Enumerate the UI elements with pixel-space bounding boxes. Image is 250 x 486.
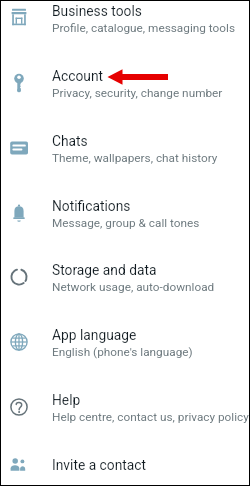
staticText: Message, group & call tones: [52, 216, 200, 230]
staticText: Privacy, security, change number: [52, 86, 223, 100]
button[interactable]: Business tools: [1, 0, 249, 51]
staticText: Account: [52, 68, 104, 84]
other: Chats: [7, 136, 31, 160]
button[interactable]: Account: [1, 51, 249, 116]
staticText: Invite a contact: [52, 457, 147, 473]
button[interactable]: App language: [1, 310, 249, 375]
button[interactable]: Storage and data: [1, 245, 249, 310]
staticText: Profile, catalogue, messaging tools: [52, 21, 235, 35]
other: Business tools: [7, 6, 31, 30]
staticText: Network usage, auto-download: [52, 280, 215, 294]
other: Storage and data: [7, 265, 31, 289]
staticText: English (phone's language): [52, 345, 193, 359]
staticText: Help centre, contact us, privacy policy: [52, 410, 249, 424]
staticText: Chats: [52, 133, 88, 149]
other: Notifications: [7, 201, 31, 225]
staticText: Storage and data: [52, 262, 157, 278]
button[interactable]: Chats: [1, 116, 249, 181]
staticText: Business tools: [52, 3, 142, 19]
other: Help: [7, 395, 31, 419]
staticText: Theme, wallpapers, chat history: [52, 151, 218, 165]
staticText: Notifications: [52, 198, 131, 214]
staticText: Help: [52, 392, 81, 408]
other: Invite a contact: [7, 452, 31, 476]
button[interactable]: Notifications: [1, 181, 249, 246]
button[interactable]: Help: [1, 375, 249, 440]
other: Account: [7, 71, 31, 95]
button[interactable]: Invite a contact: [1, 432, 249, 486]
other: App language: [7, 330, 31, 354]
staticText: App language: [52, 327, 137, 343]
